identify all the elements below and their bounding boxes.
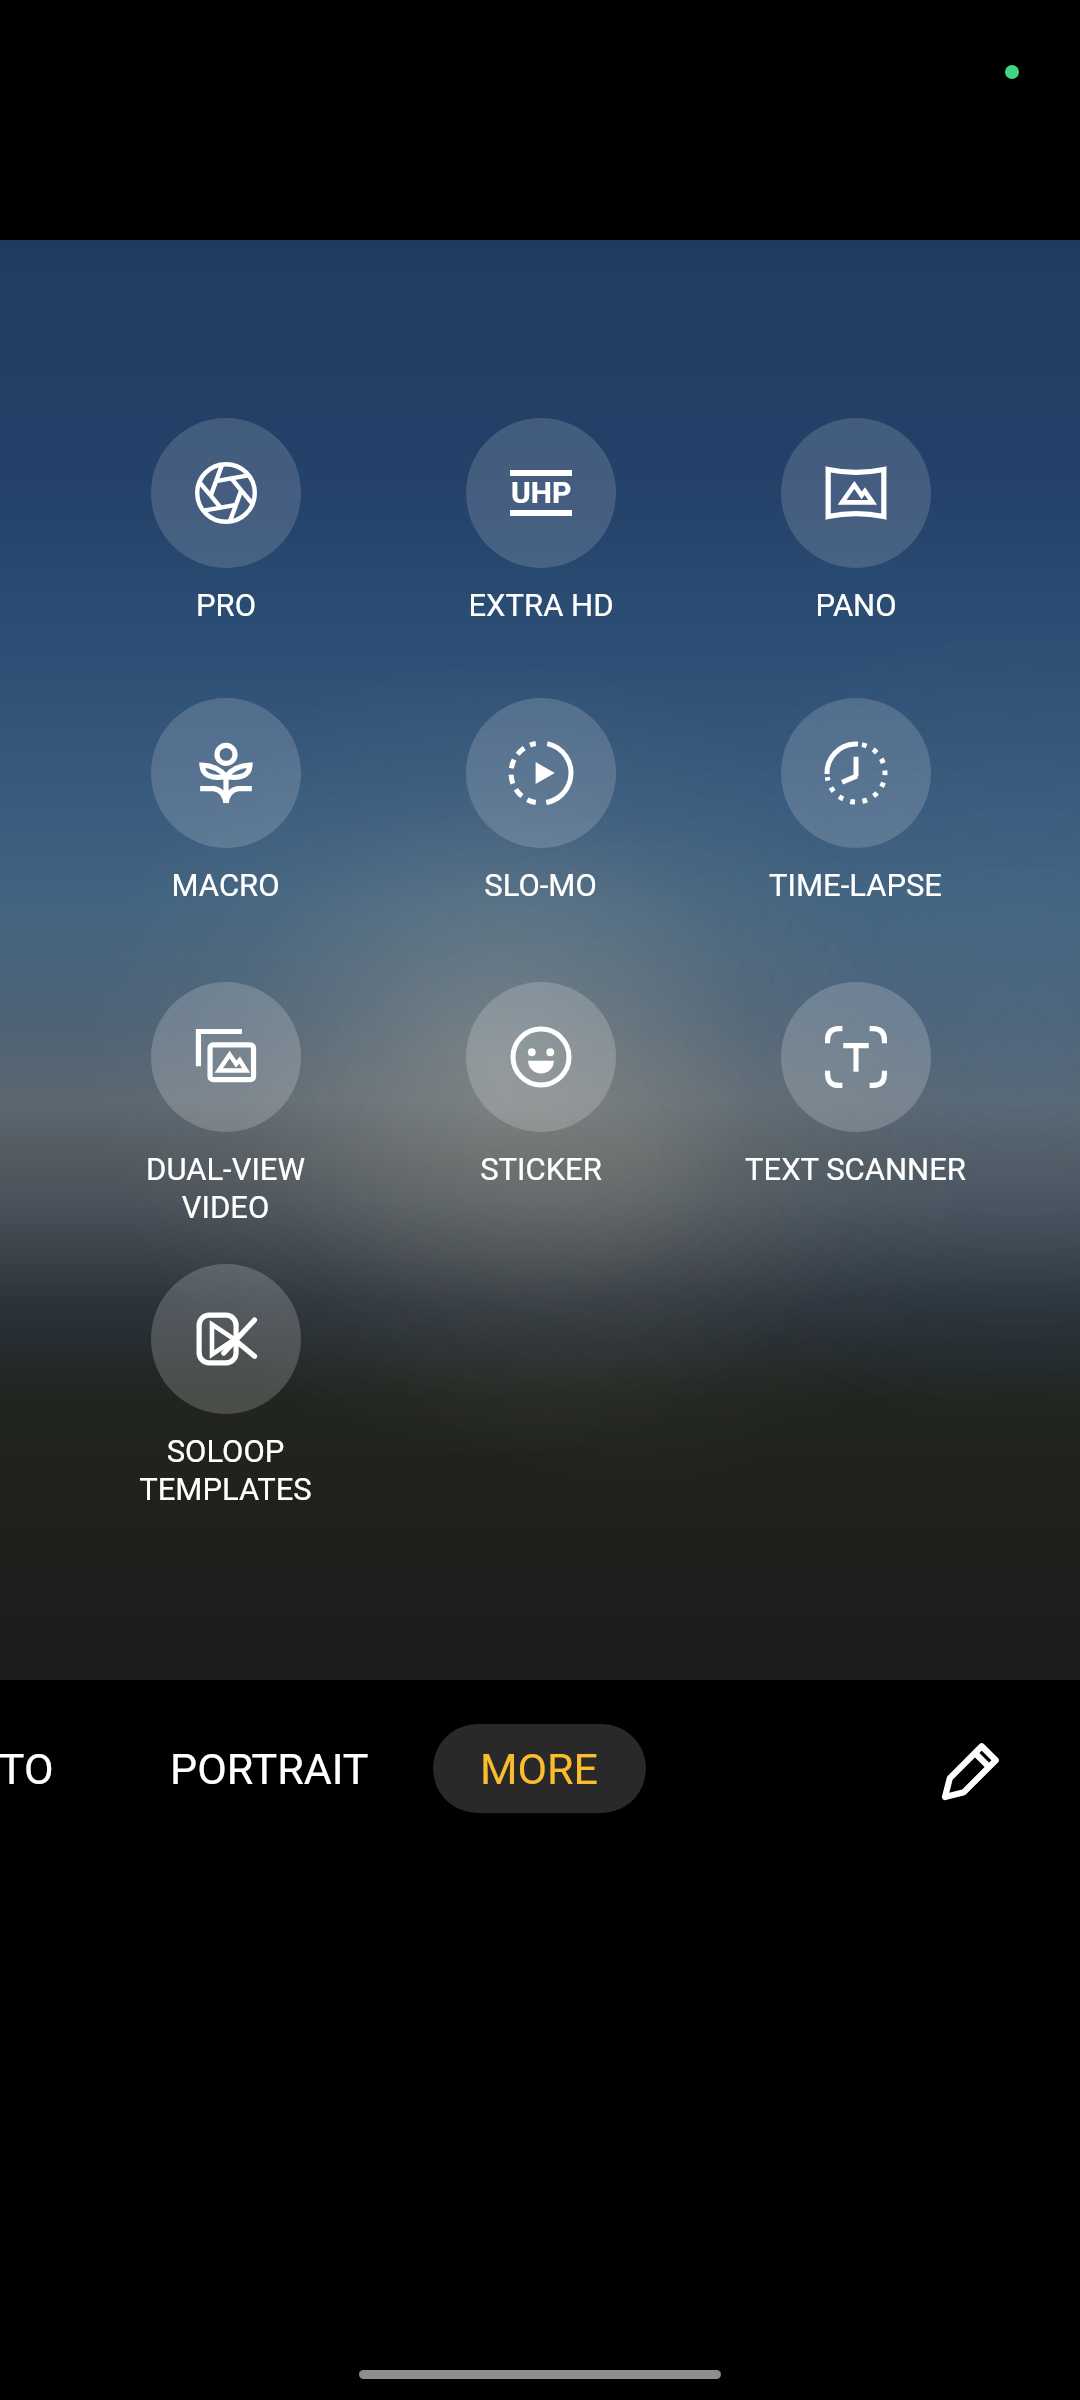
button[interactable]: UHP bbox=[383, 418, 698, 623]
staticText: SOLOOP TEMPLATES bbox=[139, 1433, 312, 1508]
button[interactable]: PRO bbox=[68, 418, 383, 623]
button[interactable]: Edit camera modes bbox=[918, 1716, 1026, 1824]
staticText: DUAL-VIEW VIDEO bbox=[146, 1151, 305, 1226]
staticText: UHP bbox=[511, 475, 572, 510]
staticText: TIME-LAPSE bbox=[769, 867, 942, 903]
staticText: PORTRAIT bbox=[170, 1744, 369, 1794]
button[interactable]: MORE bbox=[433, 1724, 646, 1813]
button[interactable]: DUAL-VIEW VIDEO bbox=[68, 982, 383, 1226]
button[interactable]: SOLOOP TEMPLATES bbox=[68, 1264, 383, 1508]
button[interactable]: TIME-LAPSE bbox=[698, 698, 1013, 903]
staticText: TEXT SCANNER bbox=[745, 1151, 966, 1187]
button[interactable]: TEXT SCANNER bbox=[698, 982, 1013, 1187]
button[interactable]: PORTRAIT bbox=[170, 1725, 369, 1813]
staticText: MACRO bbox=[171, 867, 280, 903]
button[interactable]: PHOTO bbox=[0, 1725, 54, 1813]
button[interactable]: MACRO bbox=[68, 698, 383, 903]
staticText: EXTRA HD bbox=[468, 587, 614, 623]
button[interactable]: SLO-MO bbox=[383, 698, 698, 903]
staticText: SLO-MO bbox=[484, 867, 597, 903]
staticText: STICKER bbox=[480, 1151, 602, 1187]
staticText: PRO bbox=[196, 587, 256, 623]
staticText: PANO bbox=[815, 587, 897, 623]
staticText: PHOTO bbox=[0, 1744, 54, 1794]
button[interactable]: PANO bbox=[698, 418, 1013, 623]
button[interactable]: STICKER bbox=[383, 982, 698, 1187]
staticText: MORE bbox=[480, 1744, 599, 1794]
